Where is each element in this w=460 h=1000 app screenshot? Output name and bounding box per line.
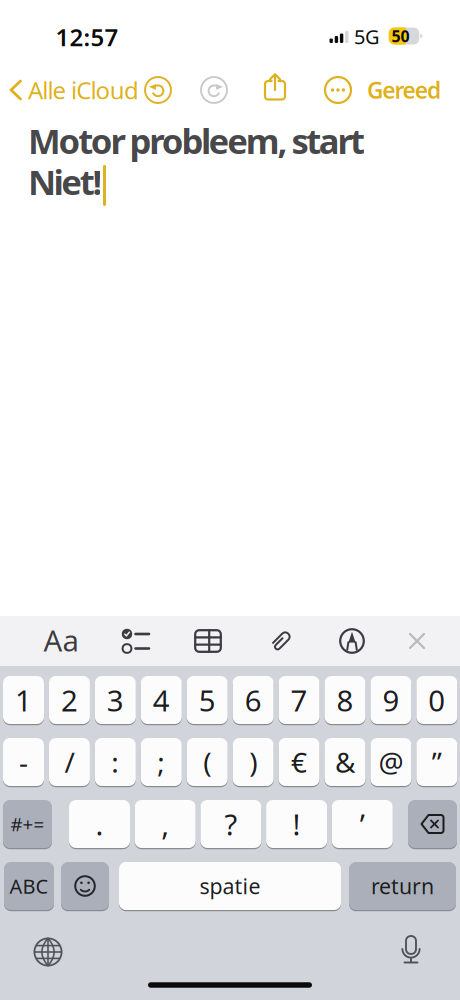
- button[interactable]: return: [349, 861, 456, 911]
- staticText: &: [335, 743, 355, 781]
- staticText: 8: [336, 680, 353, 719]
- staticText: ABC: [9, 873, 48, 899]
- button[interactable]: !: [266, 799, 327, 849]
- button[interactable]: Format: [43, 620, 78, 659]
- button[interactable]: 2: [49, 675, 90, 725]
- button[interactable]: ): [233, 737, 274, 787]
- staticText: spatie: [199, 872, 260, 900]
- button[interactable]: ,: [135, 799, 196, 849]
- staticText: 0: [428, 680, 445, 719]
- staticText: 9: [382, 680, 399, 719]
- button[interactable]: Next keyboard: [33, 937, 63, 967]
- button[interactable]: .: [69, 799, 130, 849]
- staticText: return: [371, 872, 434, 900]
- staticText: 5G: [354, 23, 380, 50]
- staticText: (: [203, 743, 211, 781]
- button[interactable]: Share: [262, 73, 288, 103]
- staticText: ”: [432, 743, 442, 781]
- button[interactable]: -: [3, 737, 44, 787]
- staticText: €: [291, 743, 307, 781]
- button[interactable]: Emoji: [61, 861, 109, 911]
- button[interactable]: Checklist: [121, 627, 151, 655]
- button[interactable]: Dismiss keyboard: [409, 633, 425, 649]
- staticText: Gereed: [367, 75, 441, 105]
- staticText: -: [19, 743, 28, 781]
- staticText: 2: [61, 680, 78, 719]
- button[interactable]: 8: [324, 675, 365, 725]
- button[interactable]: ?: [200, 799, 261, 849]
- button[interactable]: 3: [95, 675, 136, 725]
- button[interactable]: @: [370, 737, 411, 787]
- staticText: 3: [107, 680, 124, 719]
- staticText: 4: [153, 680, 170, 719]
- button[interactable]: Gereed: [367, 75, 441, 105]
- button[interactable]: More: [324, 76, 352, 104]
- staticText: Niet!: [28, 158, 102, 204]
- staticText: 50: [391, 25, 409, 47]
- button[interactable]: (: [187, 737, 228, 787]
- button[interactable]: ’: [332, 799, 393, 849]
- button[interactable]: Alle iCloud: [9, 74, 139, 106]
- button[interactable]: 0: [416, 675, 457, 725]
- button[interactable]: ;: [141, 737, 182, 787]
- button[interactable]: 6: [233, 675, 274, 725]
- staticText: 7: [291, 680, 308, 719]
- staticText: Aa: [43, 620, 78, 659]
- button[interactable]: :: [95, 737, 136, 787]
- button[interactable]: /: [49, 737, 90, 787]
- button[interactable]: #+=: [3, 799, 52, 849]
- button[interactable]: ABC: [4, 861, 54, 911]
- button[interactable]: 9: [370, 675, 411, 725]
- button[interactable]: Redo: [200, 76, 228, 104]
- staticText: :: [111, 743, 119, 781]
- staticText: /: [64, 743, 74, 781]
- button[interactable]: Delete: [408, 799, 457, 849]
- staticText: 6: [245, 680, 262, 719]
- staticText: .: [95, 804, 103, 843]
- staticText: ,: [161, 804, 169, 843]
- button[interactable]: &: [324, 737, 365, 787]
- button[interactable]: Markup: [339, 628, 365, 654]
- staticText: ’: [360, 804, 365, 843]
- staticText: Alle iCloud: [28, 74, 139, 106]
- staticText: 12:57: [55, 21, 118, 53]
- staticText: ): [249, 743, 257, 781]
- staticText: !: [293, 804, 301, 843]
- button[interactable]: Attach: [267, 627, 295, 655]
- button[interactable]: spatie: [119, 861, 341, 911]
- staticText: Motor probleem, start: [28, 117, 365, 163]
- button[interactable]: Undo: [144, 76, 172, 104]
- button[interactable]: Table: [194, 629, 222, 653]
- staticText: ?: [224, 804, 237, 843]
- staticText: #+=: [10, 812, 44, 836]
- staticText: ;: [157, 743, 165, 781]
- staticText: @: [378, 743, 403, 781]
- staticText: 5: [199, 680, 216, 719]
- button[interactable]: Dictation: [401, 935, 421, 967]
- button[interactable]: ”: [416, 737, 457, 787]
- button[interactable]: 5: [187, 675, 228, 725]
- button[interactable]: 4: [141, 675, 182, 725]
- staticText: 1: [15, 680, 32, 719]
- button[interactable]: 1: [3, 675, 44, 725]
- button[interactable]: 7: [279, 675, 320, 725]
- button[interactable]: €: [279, 737, 320, 787]
